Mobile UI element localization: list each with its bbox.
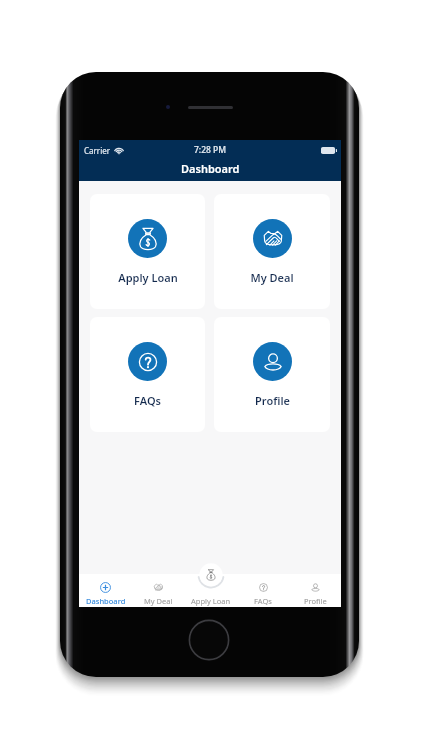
button[interactable]: My Deal — [214, 194, 330, 309]
button[interactable]: Profile — [289, 574, 341, 607]
button[interactable]: Apply Loan — [185, 574, 237, 607]
staticText: FAQs — [254, 596, 272, 606]
staticText: My Deal — [144, 596, 173, 606]
staticText: Profile — [255, 393, 290, 408]
button[interactable]: My Deal — [132, 574, 185, 607]
staticText: Dashboard — [86, 596, 126, 606]
button[interactable]: Dashboard — [79, 574, 132, 607]
staticText: FAQs — [134, 393, 161, 408]
staticText: 7:28 PM — [194, 144, 227, 156]
staticText: Dashboard — [181, 161, 240, 176]
staticText: My Deal — [250, 270, 294, 285]
staticText: Profile — [304, 596, 327, 606]
button[interactable]: FAQs — [90, 317, 205, 432]
button[interactable]: Apply Loan — [90, 194, 205, 309]
staticText: Apply Loan — [118, 270, 178, 285]
staticText: Apply Loan — [191, 596, 231, 606]
button[interactable]: FAQs — [237, 574, 289, 607]
button[interactable]: Profile — [214, 317, 330, 432]
staticText: Carrier — [84, 145, 111, 156]
